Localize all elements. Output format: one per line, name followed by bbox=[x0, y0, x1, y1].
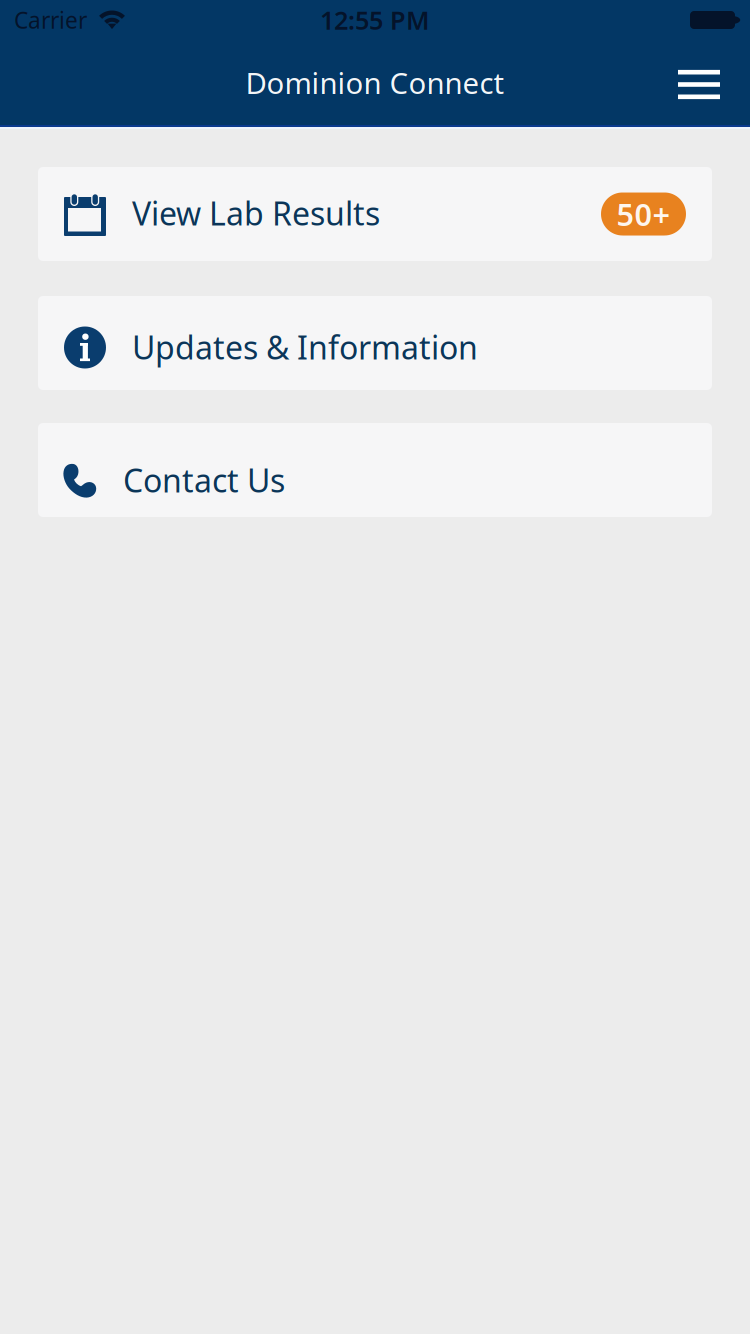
staticText: Contact Us bbox=[123, 459, 285, 501]
staticText: Carrier bbox=[14, 5, 87, 35]
button[interactable]: Contact Us bbox=[38, 423, 712, 517]
staticText: 12:55 PM bbox=[320, 3, 430, 37]
button[interactable]: Menu bbox=[661, 45, 737, 119]
staticText: Updates & Information bbox=[132, 326, 478, 368]
staticText: 50+ bbox=[616, 194, 670, 234]
staticText: View Lab Results bbox=[132, 192, 380, 234]
button[interactable]: View Lab Results bbox=[38, 167, 712, 261]
button[interactable]: Updates & Information bbox=[38, 296, 712, 390]
staticText: Dominion Connect bbox=[245, 63, 504, 102]
